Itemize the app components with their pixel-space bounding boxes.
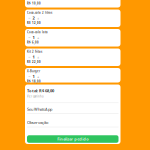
- staticText: −: [28, 15, 30, 21]
- staticText: R$ 12,00: [27, 21, 41, 25]
- button[interactable]: Increase quantity: [36, 55, 40, 59]
- staticText: +: [37, 15, 39, 21]
- staticText: X-Burger: [27, 69, 40, 73]
- button[interactable]: Increase quantity: [36, 16, 40, 20]
- staticText: R$ 6,00: [27, 41, 39, 44]
- staticText: +: [37, 35, 39, 40]
- staticText: Coca-cola lata: [27, 30, 48, 34]
- button[interactable]: Decrease quantity: [27, 35, 31, 40]
- staticText: R$ 22,00: [27, 60, 41, 64]
- staticText: R$ 10,00: [27, 2, 41, 5]
- staticText: −: [28, 35, 30, 40]
- staticText: +: [37, 54, 39, 60]
- staticText: 1: [33, 35, 35, 40]
- button[interactable]: Increase quantity: [36, 35, 40, 40]
- staticText: Total: R$ 68,00: [27, 88, 54, 93]
- staticText: 2: [33, 15, 35, 21]
- staticText: Coca-cola 2 litros: [27, 11, 52, 14]
- staticText: −: [28, 74, 30, 79]
- staticText: Ver carrinho: [27, 95, 44, 98]
- button[interactable]: Decrease quantity: [27, 55, 31, 59]
- staticText: Observação: [27, 120, 48, 125]
- button[interactable]: Increase quantity: [36, 74, 40, 79]
- staticText: 1: [33, 54, 35, 60]
- staticText: Finalizar pedido: [57, 136, 88, 142]
- staticText: −: [28, 54, 30, 60]
- staticText: R$ 18,00: [27, 80, 41, 83]
- button[interactable]: Decrease quantity: [27, 74, 31, 79]
- staticText: Seu WhatsApp: [27, 107, 52, 112]
- staticText: +: [37, 74, 39, 79]
- staticText: 1: [33, 74, 35, 79]
- staticText: Kit 2 fritas: [27, 50, 42, 53]
- button[interactable]: Finalizar pedido: [27, 135, 118, 143]
- button[interactable]: Decrease quantity: [27, 16, 31, 20]
